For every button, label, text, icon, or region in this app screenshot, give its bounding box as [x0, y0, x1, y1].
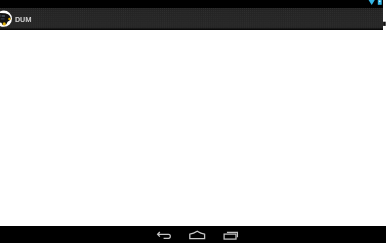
- button[interactable]: Back: [154, 226, 174, 243]
- button[interactable]: [0, 8, 383, 30]
- button[interactable]: Recent apps: [222, 226, 240, 243]
- button[interactable]: App icon, up: [0, 10, 12, 28]
- button[interactable]: Home: [188, 226, 206, 243]
- staticText: DUM: [15, 15, 32, 25]
